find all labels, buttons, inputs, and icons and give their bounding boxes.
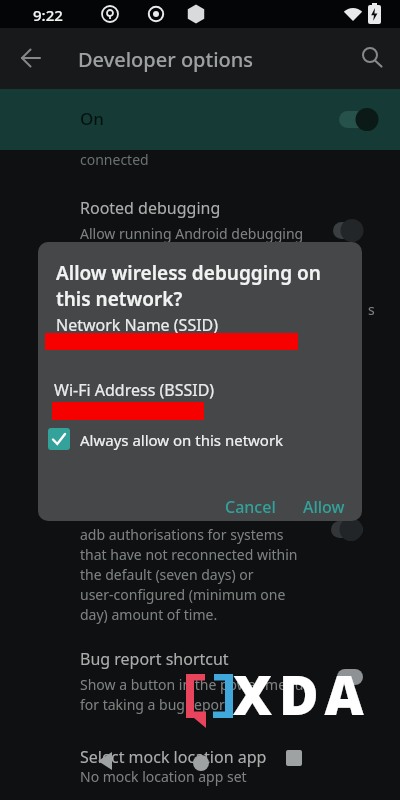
staticText: s <box>368 300 375 319</box>
staticText: for taking a bug report <box>80 695 230 714</box>
staticText: Rooted debugging <box>80 197 221 219</box>
staticText: No mock location app set <box>80 767 247 786</box>
staticText: connected <box>80 150 149 169</box>
staticText: Allow running Android debugging <box>80 224 304 243</box>
staticText: Select mock location app <box>80 746 267 768</box>
staticText: Allow <box>303 496 345 518</box>
button[interactable] <box>48 428 70 450</box>
staticText: adb authorisations for systems <box>80 525 284 544</box>
staticText: Cancel <box>225 496 276 518</box>
button[interactable]: Allow <box>293 486 353 521</box>
staticText: Always allow on this network <box>80 430 284 450</box>
staticText: On <box>80 107 104 130</box>
staticText: Wi-Fi Address (BSSID) <box>54 379 215 401</box>
staticText: XDA <box>233 657 371 731</box>
staticText: Bug report shortcut <box>80 648 229 670</box>
staticText: that have not reconnected within <box>80 545 298 564</box>
staticText: Network Name (SSID) <box>56 314 219 336</box>
staticText: Show a button in the power menu <box>80 675 304 694</box>
button[interactable] <box>0 89 400 150</box>
staticText: day) amount of time. <box>80 605 218 624</box>
staticText: 9:22 <box>33 5 63 25</box>
staticText: user-configured (minimum one <box>80 585 286 604</box>
staticText: Developer options <box>78 46 254 73</box>
button[interactable]: Cancel <box>215 486 285 521</box>
staticText: the default (seven days) or <box>80 565 254 584</box>
staticText: Allow wireless debugging on this network… <box>56 260 321 312</box>
